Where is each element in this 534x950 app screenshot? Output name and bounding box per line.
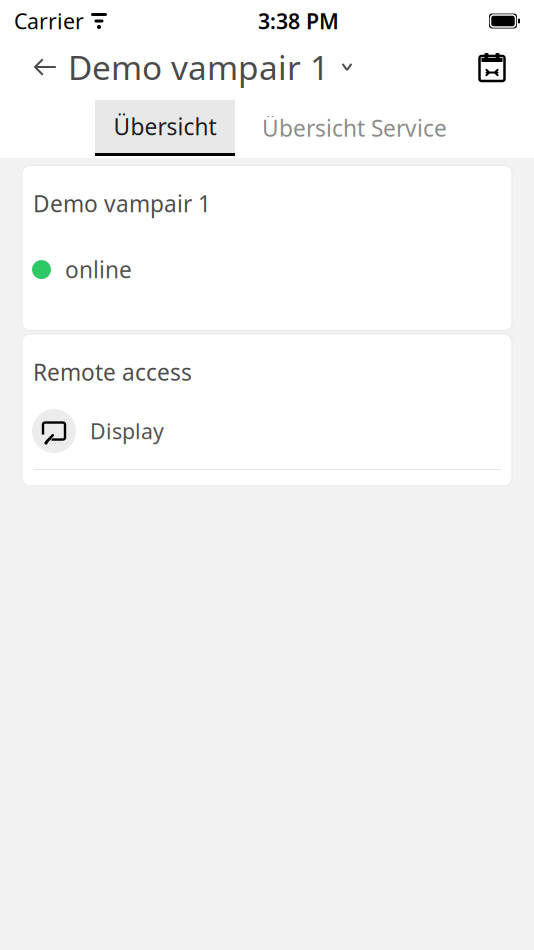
staticText: Demo vampair 1 xyxy=(33,188,211,218)
button[interactable]: Übersicht Service xyxy=(235,100,474,156)
staticText: Demo vampair 1 xyxy=(68,45,329,89)
staticText: Remote access xyxy=(33,357,192,387)
button[interactable]: Schedule xyxy=(466,41,518,93)
button[interactable]: Übersicht xyxy=(0,100,235,156)
staticText: online xyxy=(65,254,132,285)
staticText: 3:38 PM xyxy=(258,7,339,35)
staticText: Carrier xyxy=(14,7,84,35)
button[interactable]: Demo vampair 1 xyxy=(68,37,353,97)
staticText: Übersicht Service xyxy=(262,113,447,143)
button[interactable]: Back xyxy=(22,44,68,90)
staticText: Display xyxy=(90,417,164,445)
button[interactable]: Display xyxy=(22,409,512,470)
staticText: Übersicht xyxy=(113,111,216,141)
